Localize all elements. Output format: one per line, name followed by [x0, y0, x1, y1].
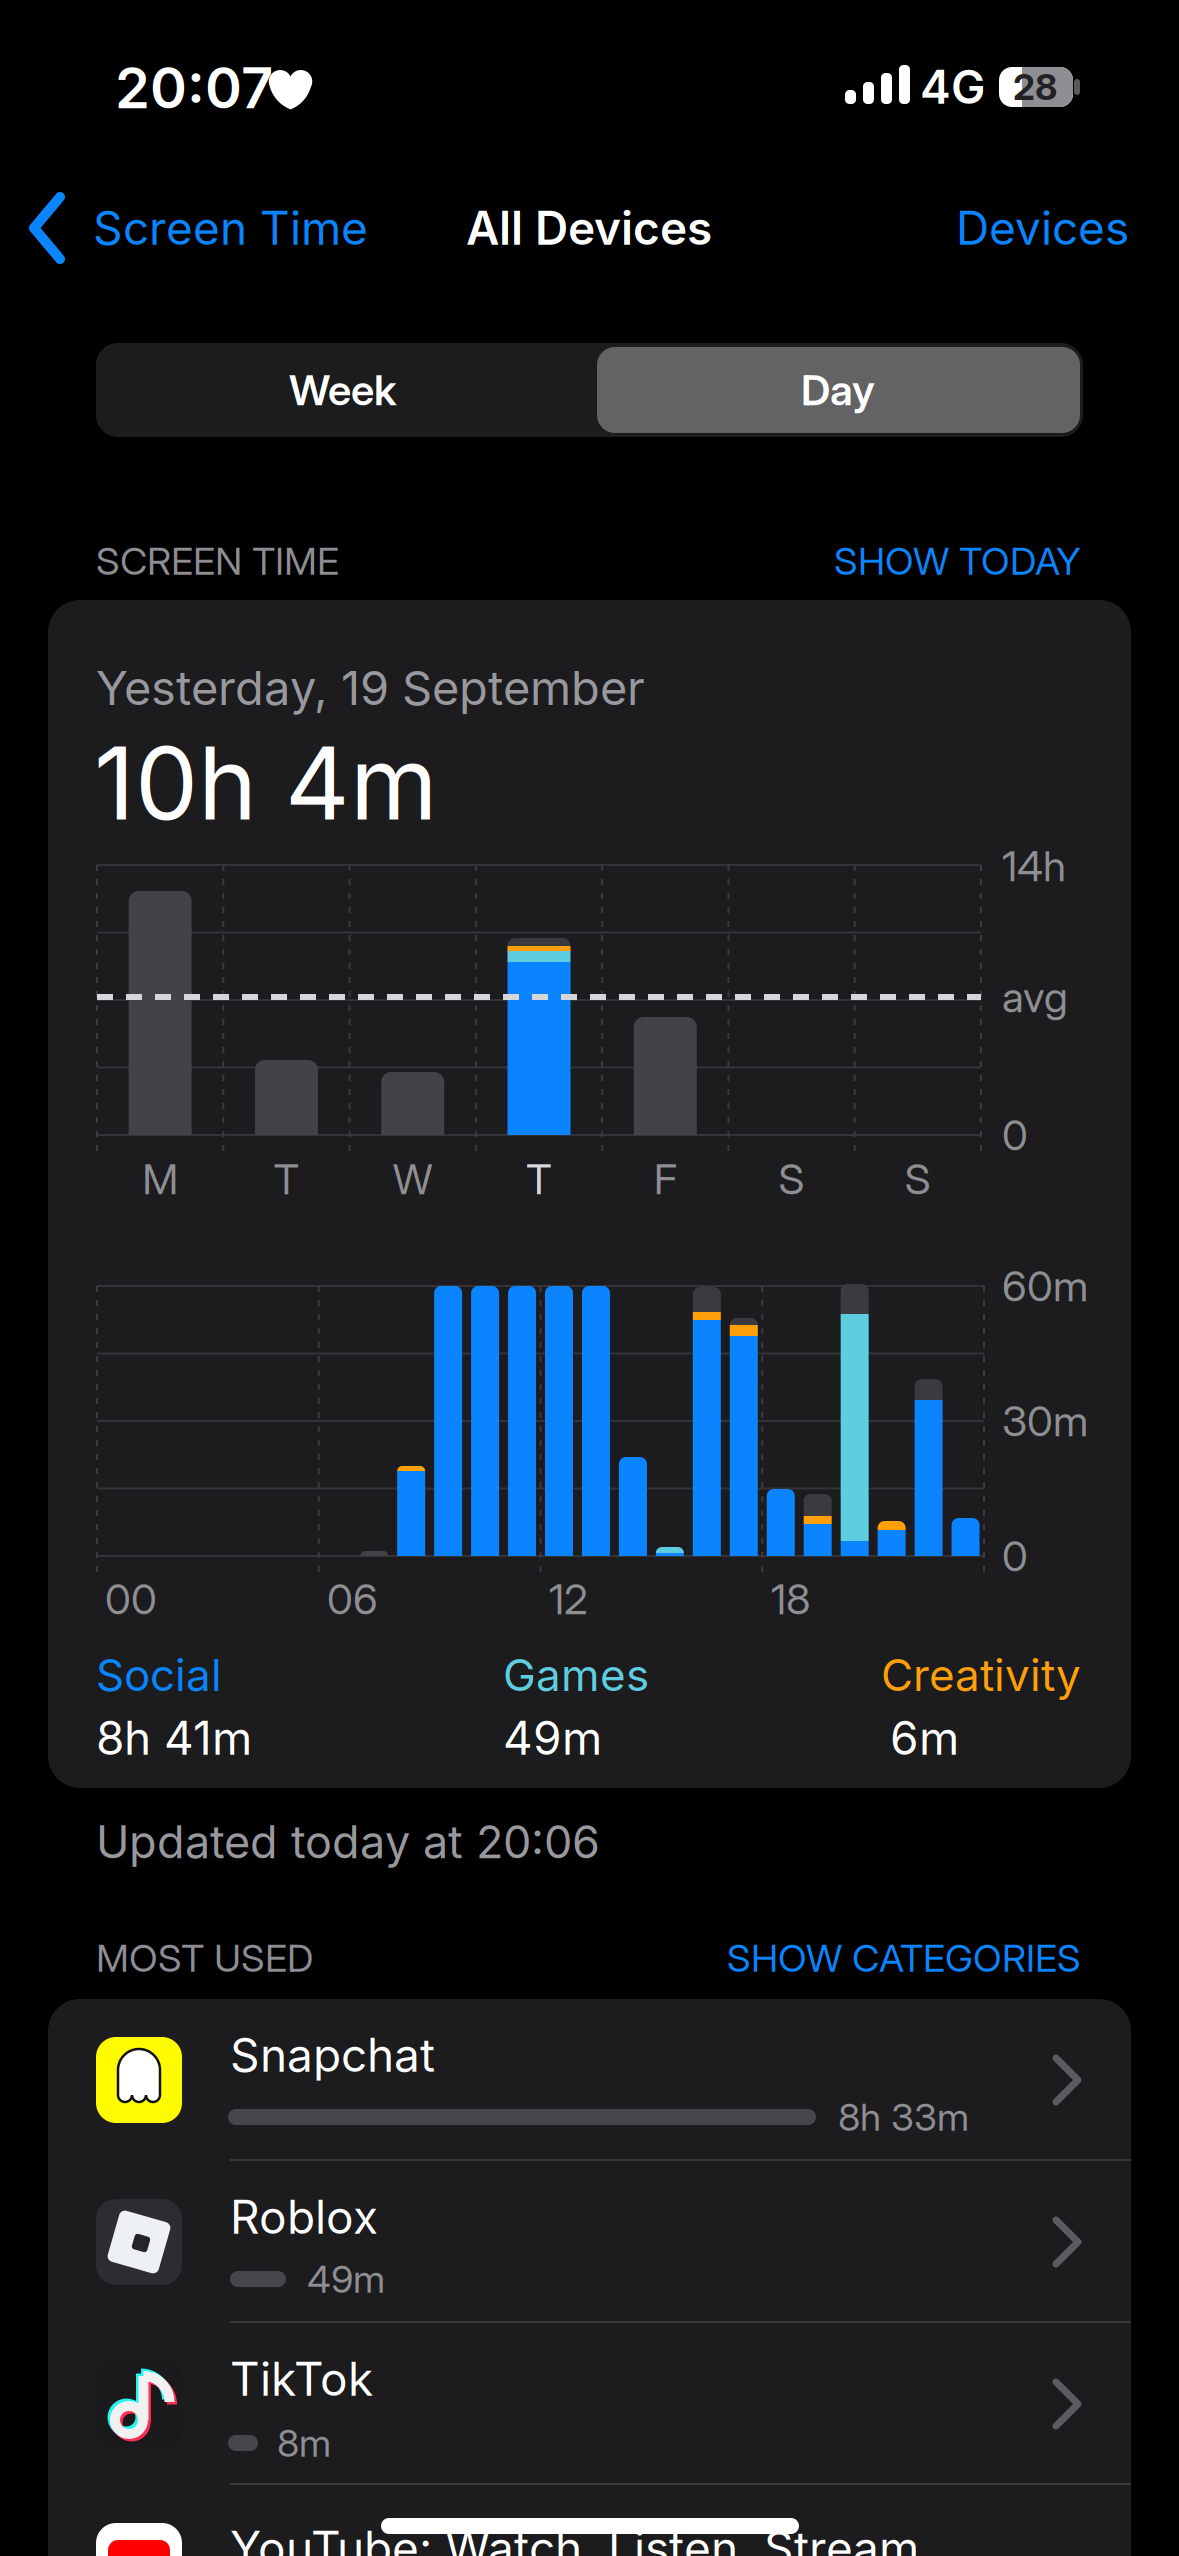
staticText: S [779, 1154, 805, 1204]
staticText: 00 [105, 1574, 157, 1624]
staticText: avg [1002, 972, 1068, 1022]
staticText: Week [289, 365, 397, 415]
staticText: 60m [1002, 1261, 1088, 1311]
staticText: TikTok [230, 2352, 373, 2406]
staticText: 30m [1002, 1396, 1088, 1446]
staticText: 0 [1002, 1110, 1028, 1160]
staticText: 14h [1002, 841, 1066, 891]
staticText: M [142, 1154, 178, 1204]
staticText: SHOW TODAY [834, 539, 1081, 583]
staticText: F [654, 1154, 677, 1204]
staticText: S [905, 1154, 931, 1204]
staticText: 8h 41m [96, 1711, 252, 1765]
button[interactable]: Week [96, 343, 590, 437]
staticText: Roblox [230, 2190, 378, 2244]
button[interactable]: SHOW CATEGORIES [521, 1926, 1081, 1990]
staticText: Devices [956, 201, 1129, 255]
staticText: T [273, 1154, 299, 1204]
button[interactable]: Roblox [48, 2161, 1179, 2556]
staticText: 8h 33m [838, 2095, 969, 2139]
staticText: 28 [1013, 66, 1057, 108]
staticText: SCREEN TIME [96, 539, 339, 583]
staticText: 10h 4m [94, 724, 438, 842]
staticText: 6m [890, 1711, 959, 1765]
staticText: Yesterday, 19 September [96, 660, 645, 716]
button[interactable]: SHOW TODAY [661, 529, 1081, 593]
staticText: T [526, 1154, 552, 1204]
staticText: 49m [503, 1711, 602, 1765]
staticText: Games [503, 1649, 649, 1701]
staticText: All Devices [466, 201, 712, 255]
button[interactable]: TikTok [48, 2323, 1179, 2556]
staticText: 4G [920, 60, 985, 114]
staticText: 0 [1002, 1531, 1028, 1581]
button[interactable]: Snapchat [48, 1999, 1179, 2556]
button[interactable]: Screen Time [20, 183, 1179, 2556]
button[interactable]: YouTube: Watch, Listen, Stream [48, 2485, 1131, 2556]
staticText: Creativity [881, 1649, 1081, 1701]
staticText: Social [96, 1649, 222, 1701]
staticText: Updated today at 20:06 [96, 1815, 600, 1869]
staticText: 06 [327, 1574, 378, 1624]
staticText: 49m [307, 2257, 385, 2301]
button[interactable]: Day [597, 347, 1080, 433]
staticText: YouTube: Watch, Listen, Stream [230, 2521, 919, 2556]
button[interactable]: Devices [859, 183, 1129, 275]
staticText: SHOW CATEGORIES [727, 1936, 1081, 1980]
staticText: W [393, 1154, 433, 1204]
staticText: Snapchat [230, 2028, 435, 2082]
staticText: Screen Time [93, 201, 368, 255]
staticText: MOST USED [96, 1936, 313, 1980]
staticText: Day [801, 365, 875, 415]
staticText: 12 [549, 1574, 588, 1624]
staticText: 8m [277, 2421, 331, 2465]
staticText: 20:07 [115, 55, 273, 121]
staticText: 18 [771, 1574, 810, 1624]
